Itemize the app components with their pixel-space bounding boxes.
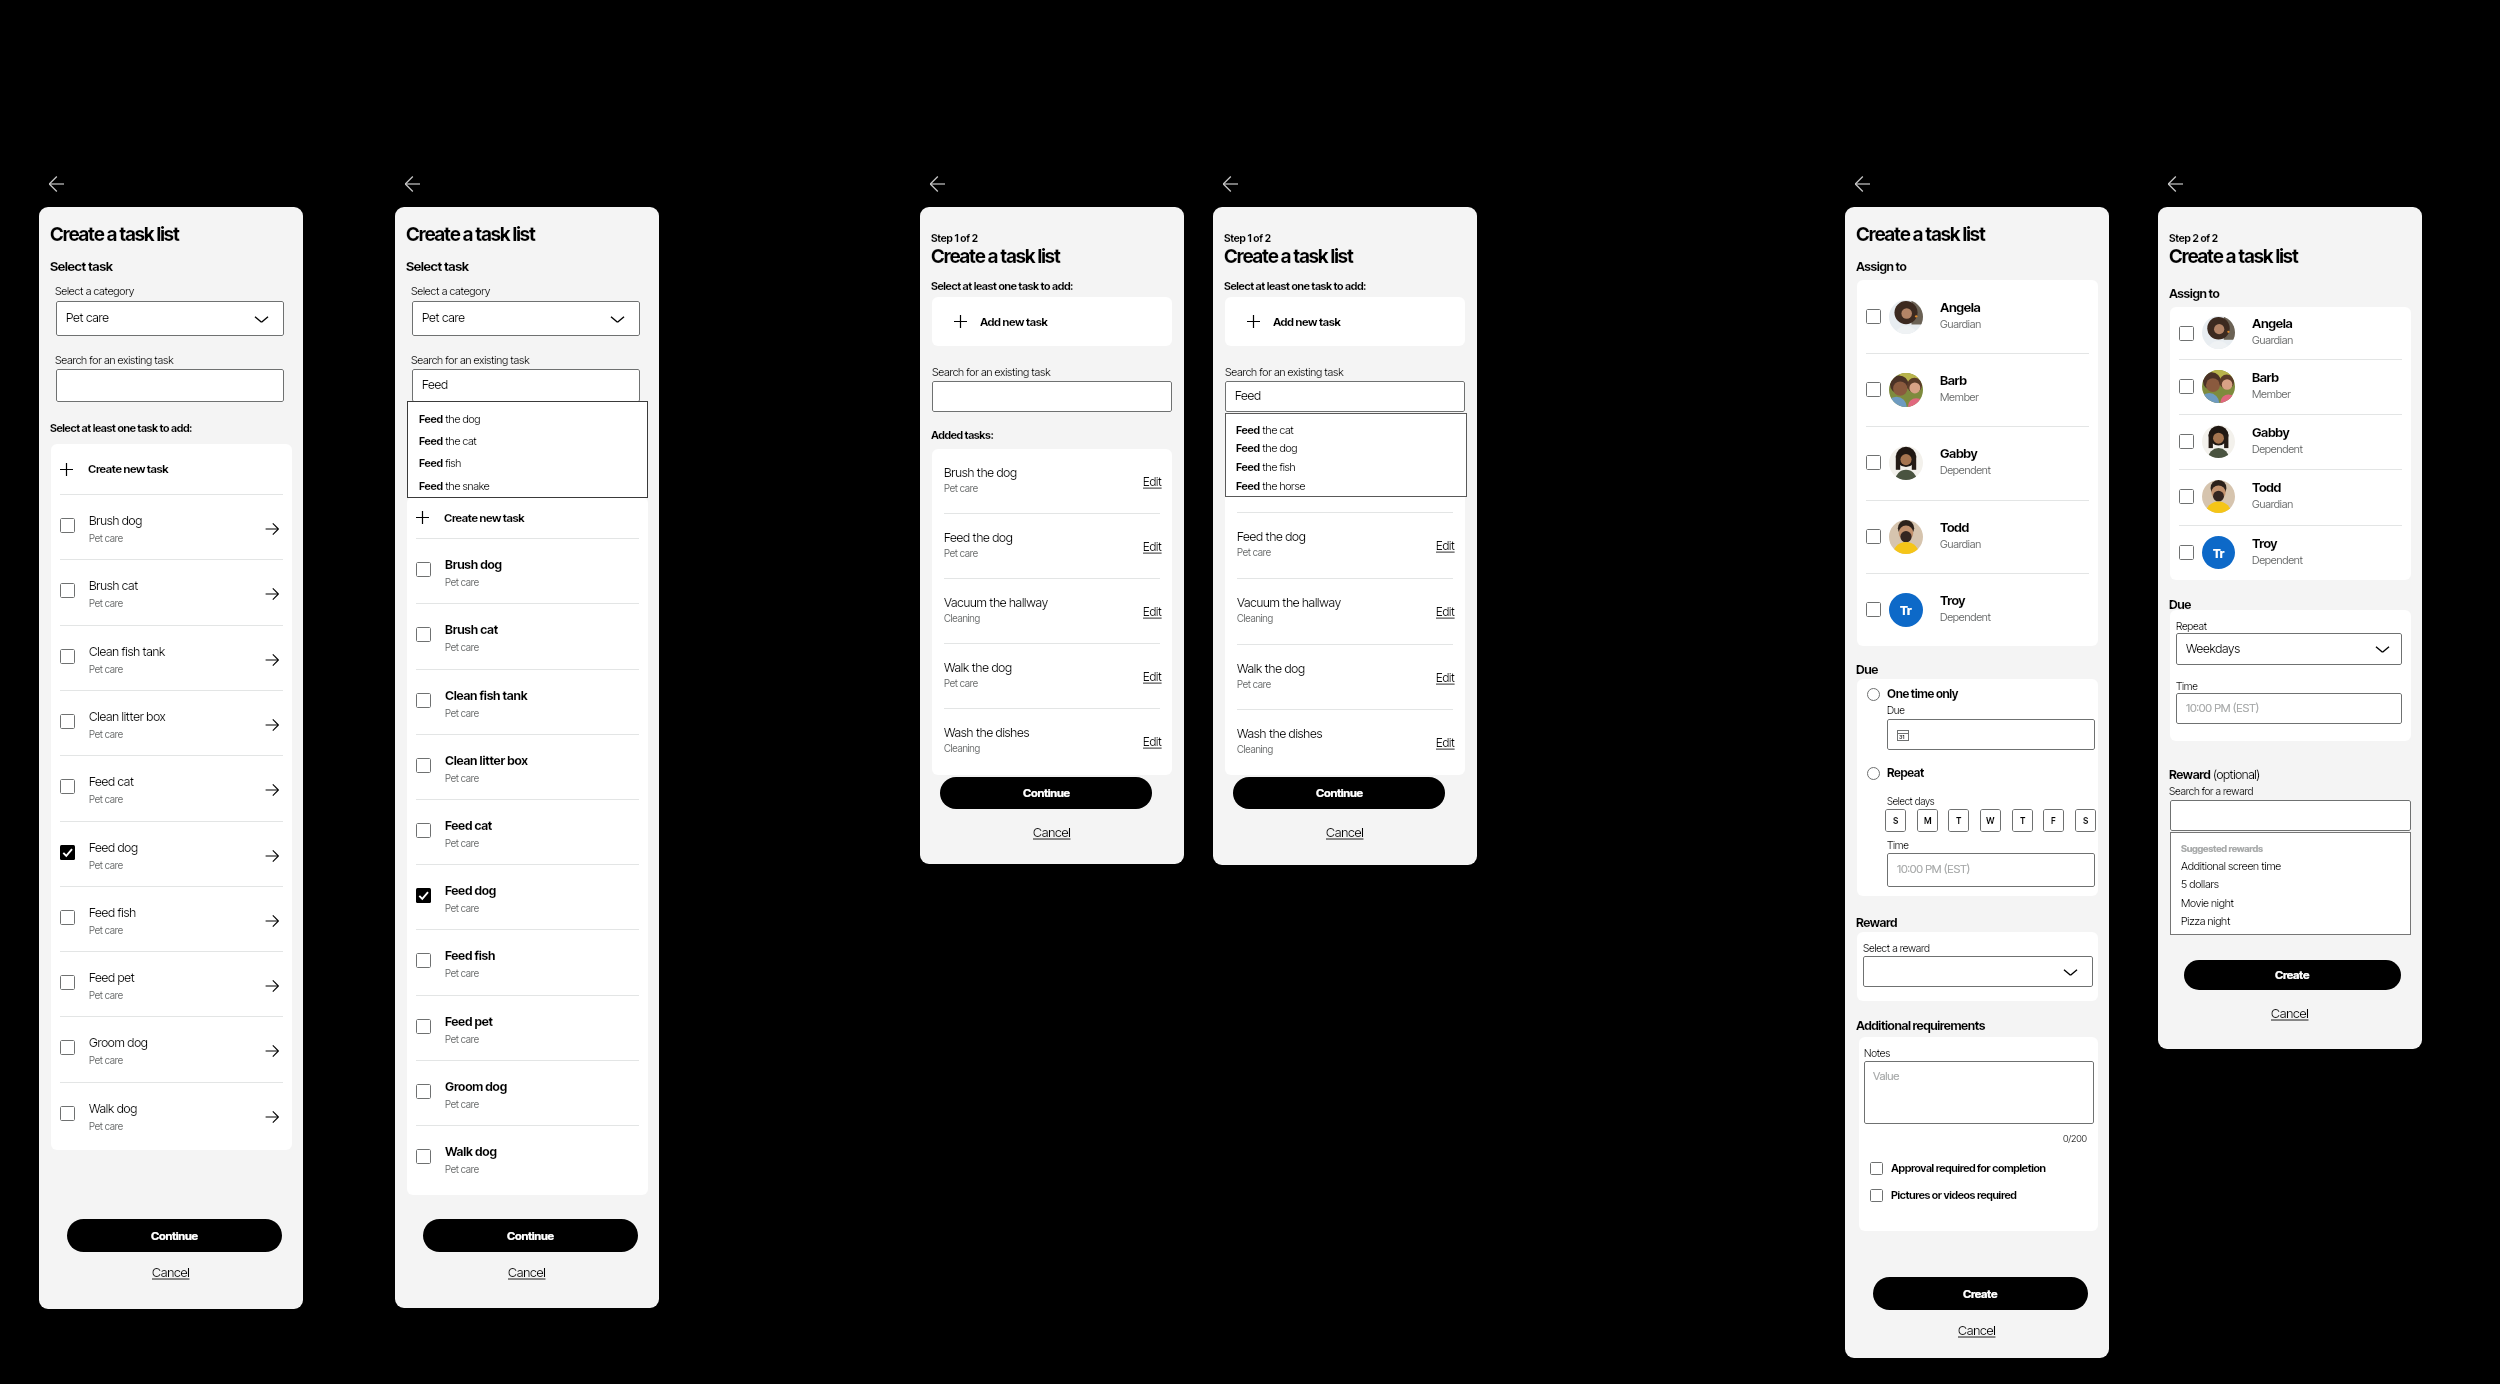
button[interactable]: Cancel <box>1317 824 1373 840</box>
button[interactable]: Select <box>1866 602 1881 617</box>
button[interactable]: Select <box>2179 379 2194 394</box>
button[interactable]: Add new task <box>932 297 1172 346</box>
button[interactable]: S <box>1885 809 1906 832</box>
button[interactable]: Option <box>1867 688 1880 701</box>
button[interactable]: S <box>2075 809 2096 832</box>
button[interactable]: Edit <box>1436 735 1458 751</box>
button[interactable]: Select <box>407 1060 648 1125</box>
button[interactable]: Select <box>407 603 648 668</box>
button[interactable]: Option <box>1867 767 1880 780</box>
button[interactable]: Select <box>407 929 648 994</box>
button[interactable]: Add new task <box>1225 297 1465 346</box>
button[interactable]: Back <box>928 173 952 195</box>
button[interactable]: Vacuum the hallway <box>932 578 1172 643</box>
button[interactable]: Open <box>265 783 279 797</box>
button[interactable]: Create <box>2184 960 2401 990</box>
button[interactable]: Select <box>51 690 292 755</box>
button[interactable]: Select <box>60 975 75 990</box>
button[interactable]: Create <box>1873 1277 2088 1310</box>
button[interactable] <box>1863 956 2093 987</box>
button[interactable]: Select <box>407 538 648 603</box>
button[interactable]: Edit <box>1143 539 1165 555</box>
button[interactable]: Select <box>416 823 431 838</box>
button[interactable]: Select <box>2170 414 2411 469</box>
button[interactable]: Select <box>2170 307 2411 359</box>
button[interactable]: Open <box>265 1110 279 1124</box>
button[interactable]: Continue <box>67 1219 282 1252</box>
button[interactable] <box>932 381 1172 412</box>
button[interactable]: 10:00 PM (EST) <box>1887 853 2095 887</box>
button[interactable]: Select <box>1857 500 2098 573</box>
button[interactable]: Wash the dishes <box>1225 709 1465 775</box>
button[interactable]: Wash the dishes <box>932 708 1172 773</box>
button[interactable]: Select <box>60 583 75 598</box>
button[interactable]: Select <box>407 799 648 864</box>
button[interactable]: Select <box>2179 434 2194 449</box>
button[interactable]: Vacuum the hallway <box>1225 578 1465 644</box>
button[interactable]: Back <box>47 173 71 195</box>
button[interactable]: Select <box>1866 382 1881 397</box>
button[interactable]: Select <box>1857 280 2098 353</box>
button[interactable]: Open <box>265 914 279 928</box>
button[interactable]: Select <box>407 1125 648 1190</box>
button[interactable] <box>2170 800 2411 831</box>
button[interactable]: Select <box>416 888 431 903</box>
button[interactable]: Select <box>60 845 75 860</box>
button[interactable]: Select <box>416 693 431 708</box>
button[interactable]: Edit <box>1143 474 1165 490</box>
button[interactable]: T <box>1948 809 1969 832</box>
button[interactable]: Select <box>51 1082 292 1147</box>
button[interactable]: Edit <box>1143 669 1165 685</box>
button[interactable]: Select <box>2170 469 2411 524</box>
button[interactable]: Select <box>1857 353 2098 426</box>
button[interactable]: Select <box>1870 1189 1883 1202</box>
button[interactable]: Select <box>416 758 431 773</box>
button[interactable]: Select <box>1857 573 2098 646</box>
button[interactable]: Select <box>60 1040 75 1055</box>
button[interactable]: Feed the dog <box>1225 512 1465 578</box>
button[interactable]: Select <box>2179 326 2194 341</box>
button[interactable]: Select <box>1866 455 1881 470</box>
button[interactable]: Open <box>265 653 279 667</box>
button[interactable]: Select <box>1870 1162 1883 1175</box>
button[interactable]: M <box>1917 809 1938 832</box>
button[interactable]: Cancel <box>143 1264 199 1280</box>
button[interactable]: Select <box>416 1149 431 1164</box>
button[interactable]: Select <box>51 821 292 886</box>
button[interactable]: Select <box>407 864 648 929</box>
button[interactable]: Select <box>51 951 292 1016</box>
button[interactable]: Open <box>265 1044 279 1058</box>
button[interactable]: Select <box>2179 489 2194 504</box>
button[interactable]: Select <box>2170 525 2411 580</box>
button[interactable]: Pet care <box>412 301 640 336</box>
button[interactable]: Create new task <box>407 497 648 538</box>
button[interactable]: T <box>2012 809 2033 832</box>
button[interactable]: Cancel <box>1024 824 1080 840</box>
button[interactable]: Select <box>1866 309 1881 324</box>
button[interactable]: W <box>1980 809 2001 832</box>
button[interactable]: Select <box>1857 426 2098 499</box>
button[interactable]: Select <box>2179 545 2194 560</box>
button[interactable]: Edit <box>1436 670 1458 686</box>
button[interactable]: Select <box>51 494 292 559</box>
button[interactable]: Select <box>1866 529 1881 544</box>
button[interactable]: Select <box>416 1019 431 1034</box>
button[interactable] <box>56 369 284 402</box>
button[interactable]: 10:00 PM (EST) <box>2176 693 2402 724</box>
button[interactable]: Back <box>1853 173 1877 195</box>
button[interactable]: Select <box>416 627 431 642</box>
button[interactable]: Edit <box>1143 734 1165 750</box>
button[interactable]: Select <box>416 953 431 968</box>
button[interactable]: Value <box>1864 1061 2094 1124</box>
button[interactable]: Select <box>1859 1158 2098 1184</box>
button[interactable]: Cancel <box>2262 1005 2318 1021</box>
button[interactable]: Select <box>60 910 75 925</box>
button[interactable]: Select <box>2170 359 2411 414</box>
button[interactable]: Continue <box>1233 777 1445 809</box>
button[interactable]: Select <box>60 518 75 533</box>
button[interactable]: Weekdays <box>2176 633 2402 665</box>
button[interactable]: Open <box>265 587 279 601</box>
button[interactable]: Feed <box>1225 381 1465 412</box>
button[interactable]: Back <box>2166 173 2190 195</box>
button[interactable]: Cancel <box>499 1264 555 1280</box>
